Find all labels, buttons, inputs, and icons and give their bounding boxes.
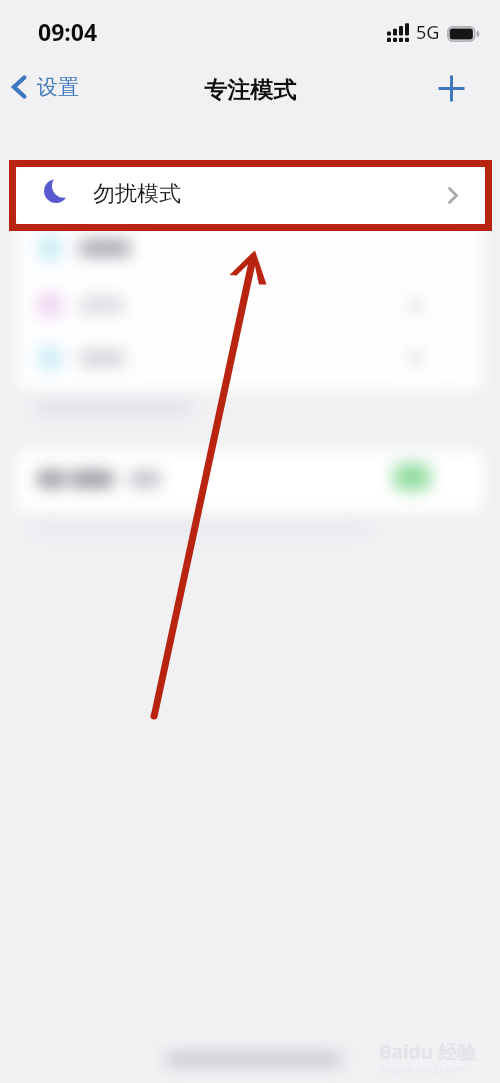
staticText: 专注模式 [204,76,296,105]
staticText: Baidu 经验 [379,1039,476,1065]
button[interactable]: Back to Settings [4,70,87,104]
staticText: 勿扰模式 [93,180,181,208]
staticText: 设置 [37,74,79,100]
staticText: 09:04 [38,16,98,47]
staticText: 5G [416,20,440,45]
button[interactable]: 勿扰模式 [15,165,485,225]
button[interactable]: Add focus mode [428,65,474,111]
